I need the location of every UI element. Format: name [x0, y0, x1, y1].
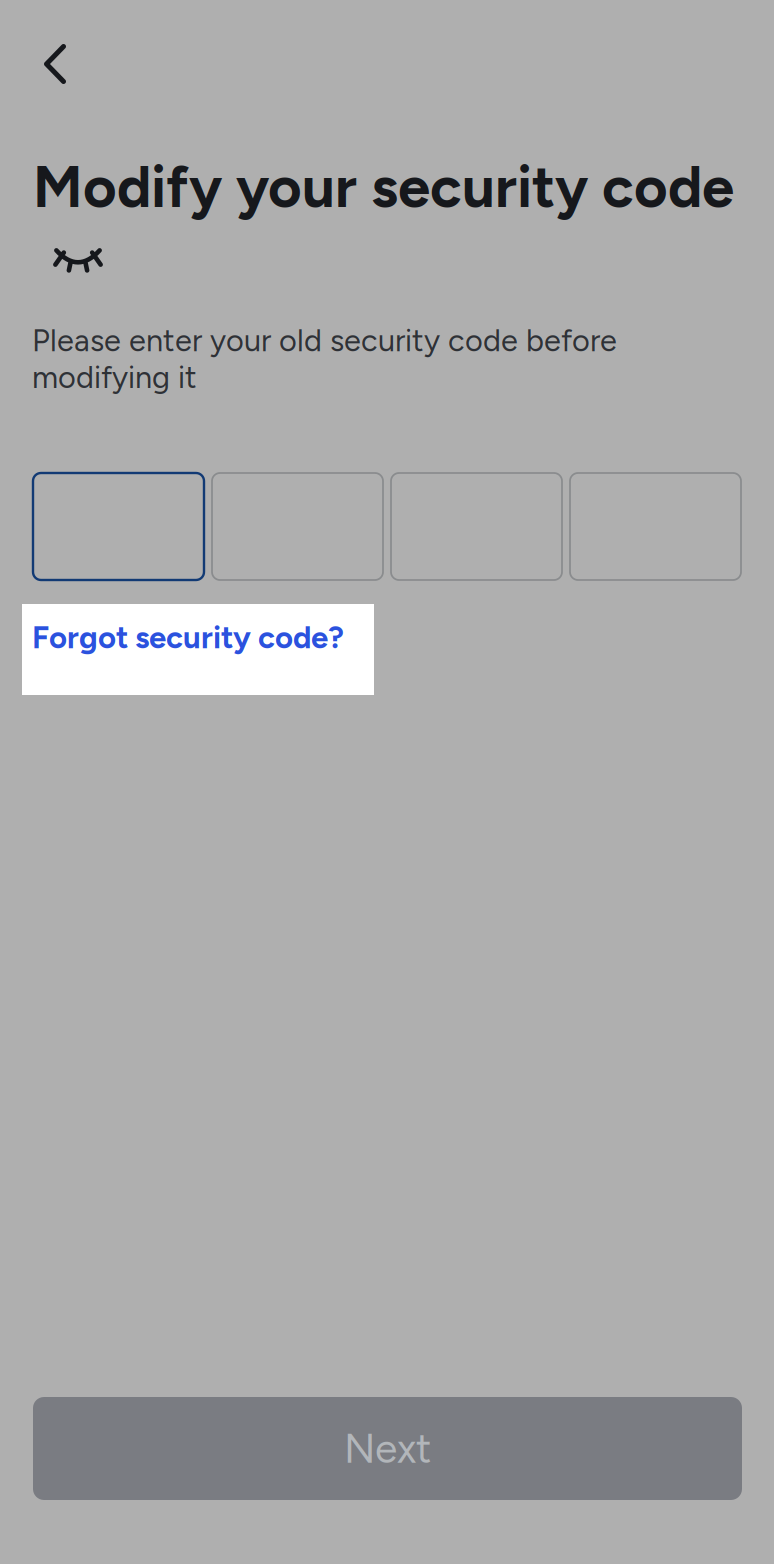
staticText: Modify your security code	[33, 152, 734, 221]
staticText: Forgot security code?	[32, 619, 344, 656]
staticText: Please enter your old security code befo…	[32, 322, 617, 396]
button[interactable]: Forgot security code?	[22, 604, 374, 695]
staticText: Next	[344, 1424, 431, 1473]
button[interactable]: Next	[33, 1397, 742, 1500]
button[interactable]: Back	[0, 0, 92, 104]
